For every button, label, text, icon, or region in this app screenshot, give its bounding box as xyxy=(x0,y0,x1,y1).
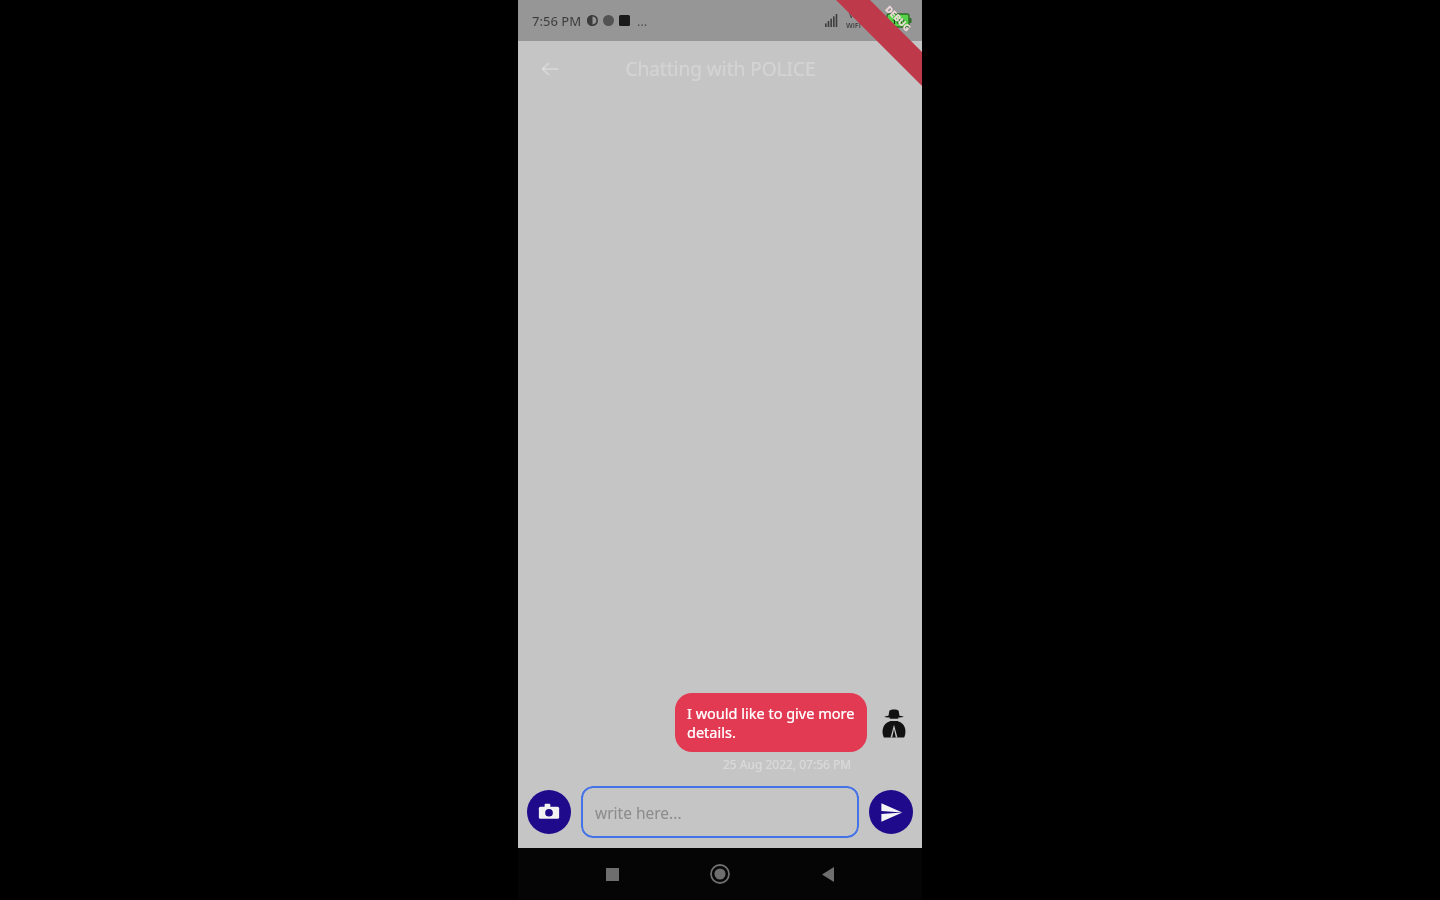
staticText: … xyxy=(637,12,648,30)
button[interactable]: Send xyxy=(869,790,913,834)
button[interactable]: Attach photo xyxy=(527,790,571,834)
staticText: Chatting with POLICE xyxy=(625,56,816,82)
button[interactable]: Recent apps xyxy=(592,854,632,894)
button[interactable]: I would like to give more details. xyxy=(675,693,867,752)
staticText: WiFi xyxy=(846,21,861,31)
button[interactable]: write here... xyxy=(581,786,859,838)
other: Anonymous user avatar xyxy=(877,706,911,740)
button[interactable]: Back xyxy=(808,854,848,894)
staticText: write here... xyxy=(595,802,682,823)
button[interactable]: Home xyxy=(700,854,740,894)
staticText: 7:56 PM xyxy=(532,12,582,30)
staticText: Vo xyxy=(849,11,858,21)
staticText: 25 Aug 2022, 07:56 PM xyxy=(723,756,852,772)
staticText: I would like to give more details. xyxy=(687,703,855,742)
staticText: DEBUG xyxy=(883,3,914,33)
staticText: 100 xyxy=(892,16,905,26)
